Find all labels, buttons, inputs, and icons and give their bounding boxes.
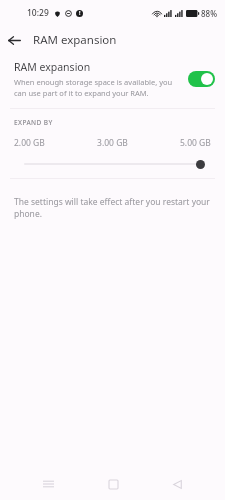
staticText: ! xyxy=(79,10,81,17)
staticText: 88% xyxy=(201,8,217,19)
staticText: RAM expansion xyxy=(33,32,117,48)
button[interactable]: Expand by slider, 5.00 GB xyxy=(0,157,225,171)
button[interactable]: RAM expansion toggle, on xyxy=(188,71,215,87)
staticText: RAM expansion xyxy=(14,60,91,74)
staticText: 10:29 xyxy=(27,7,49,19)
staticText: can use part of it to expand your RAM. xyxy=(14,88,149,98)
staticText: The settings will take effect after you … xyxy=(14,196,215,220)
staticText: 2.00 GB xyxy=(14,137,45,149)
staticText: When enough storage space is available, … xyxy=(14,77,173,87)
button[interactable]: Home xyxy=(96,468,130,500)
button[interactable]: RAM expansion xyxy=(0,54,225,108)
staticText: 5.00 GB xyxy=(180,137,211,149)
staticText: 3.00 GB xyxy=(97,137,128,149)
button[interactable]: Recent apps xyxy=(31,468,65,500)
button[interactable]: Back xyxy=(8,27,26,53)
button[interactable]: Back xyxy=(160,468,194,500)
staticText: EXPAND BY xyxy=(14,118,53,127)
